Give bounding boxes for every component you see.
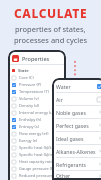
staticText: Specific heat (kJ/m3) xyxy=(19,152,57,157)
staticText: Volume (v) xyxy=(19,96,39,101)
button[interactable]: Perfect gases xyxy=(52,119,101,131)
button[interactable]: Enthalpy (h) xyxy=(8,116,66,123)
staticText: Properties xyxy=(22,55,50,62)
button[interactable]: Pressure (P) xyxy=(8,81,66,88)
staticText: processes and cycles xyxy=(14,35,88,45)
button[interactable]: Gauge pressure (Pg) xyxy=(8,165,66,172)
button[interactable]: State xyxy=(8,67,66,74)
button[interactable]: Temperature (T) xyxy=(8,88,66,95)
button[interactable]: Reduced temperature xyxy=(8,179,66,180)
button[interactable]: Water xyxy=(52,80,101,92)
staticText: Reduced pressure (Pr) xyxy=(19,173,61,178)
staticText: Exergy (e) xyxy=(19,138,38,143)
button[interactable]: Density (d) xyxy=(8,102,66,109)
staticText: Heat capacity ratio (k) xyxy=(19,159,60,164)
staticText: Internal energy (u) xyxy=(19,110,54,115)
staticText: Density (d) xyxy=(19,103,39,108)
button[interactable]: Internal energy (u) xyxy=(8,109,66,116)
button[interactable]: Refrigerants xyxy=(52,158,101,170)
button[interactable]: Ideal gases xyxy=(52,132,101,144)
button[interactable]: Entropy (s) xyxy=(8,123,66,130)
button[interactable]: Noble gases xyxy=(52,106,101,118)
other: Open Ideal gases xyxy=(98,136,101,140)
button[interactable]: Exergy (e) xyxy=(8,137,66,144)
staticText: Refrigerants xyxy=(56,161,98,168)
other: Properties icon xyxy=(12,55,19,62)
button[interactable]: Alkanes-Alkenes xyxy=(52,145,101,157)
button[interactable]: Specific heat (kJ/kgK) xyxy=(8,144,66,151)
button[interactable]: Core (C) xyxy=(8,74,66,81)
staticText: Entropy (s) xyxy=(19,124,39,129)
staticText: CALCULATE xyxy=(14,5,88,21)
staticText: Water xyxy=(56,83,97,90)
other: Open Noble gases xyxy=(98,110,101,114)
other: Open Perfect gases xyxy=(98,123,101,127)
staticText: Ideal gases xyxy=(56,135,98,142)
staticText: Noble gases xyxy=(56,109,98,116)
button[interactable]: Other substances xyxy=(52,171,101,180)
staticText: State xyxy=(18,68,29,74)
staticText: Gauge pressure (Pg) xyxy=(19,166,58,171)
button[interactable]: Flow exergy (ef) xyxy=(8,130,66,137)
staticText: properties of states, xyxy=(15,24,86,34)
staticText: Other substances xyxy=(56,172,98,179)
staticText: Perfect gases xyxy=(56,122,98,129)
staticText: Specific heat (kJ/kgK) xyxy=(19,145,58,150)
staticText: Alkanes-Alkenes xyxy=(56,148,98,155)
staticText: Enthalpy (h) xyxy=(19,117,42,122)
other: Open Refrigerants xyxy=(98,162,101,166)
staticText: Pressure (P) xyxy=(19,82,42,87)
staticText: Core (C) xyxy=(19,75,34,80)
staticText: Flow exergy (ef) xyxy=(19,131,49,136)
button[interactable]: Air xyxy=(52,93,101,105)
button[interactable]: Properties icon xyxy=(8,53,66,64)
staticText: Air xyxy=(56,96,97,103)
other: Open Other substances xyxy=(98,174,101,178)
button[interactable]: Specific heat (kJ/m3) xyxy=(8,151,66,158)
button[interactable]: Heat capacity ratio (k) xyxy=(8,158,66,165)
button[interactable]: Volume (v) xyxy=(8,95,66,102)
button[interactable]: Reduced pressure (Pr) xyxy=(8,172,66,179)
other: Open Alkanes-Alkenes xyxy=(98,149,101,153)
staticText: Temperature (T) xyxy=(19,89,49,94)
